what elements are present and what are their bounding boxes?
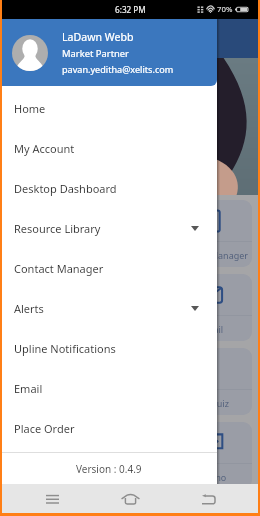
staticText: Contact Manager [14, 261, 104, 276]
button[interactable]: Desktop Dashboard [0, 168, 217, 208]
button[interactable]: Recents [30, 484, 74, 513]
staticText: 70% [217, 4, 233, 15]
button[interactable]: Back [186, 484, 230, 513]
staticText: Events [114, 471, 142, 483]
staticText: Biz Quiz [195, 397, 229, 409]
staticText: Email [200, 323, 224, 335]
button[interactable]: Alerts [0, 288, 217, 328]
staticText: Contact Manager [175, 249, 249, 261]
button[interactable]: LaDawn Webb [0, 19, 217, 86]
button[interactable]: Alerts [4, 348, 84, 415]
button[interactable]: Dashboard [4, 274, 84, 341]
button[interactable]: Library [88, 274, 168, 341]
button[interactable]: Home [0, 88, 217, 128]
button[interactable]: Upline [4, 422, 84, 489]
staticText: pavan.yeditha@xelits.com [62, 63, 174, 75]
button[interactable]: Resource Library [0, 208, 217, 248]
button[interactable]: Email [172, 274, 252, 341]
button[interactable]: Promo [172, 422, 252, 489]
staticText: Upline Notifications [14, 341, 116, 356]
staticText: Alerts [14, 301, 44, 316]
button[interactable]: Home [4, 200, 84, 267]
staticText: LaDawn Webb [62, 30, 134, 44]
button[interactable]: Order [88, 348, 168, 415]
button[interactable]: My Account [88, 200, 168, 267]
staticText: Promo [198, 471, 227, 483]
staticText: Market Partner [62, 47, 130, 60]
staticText: Desktop Dashboard [14, 181, 117, 196]
staticText: Email [14, 381, 43, 396]
staticText: My Account [14, 141, 75, 156]
button[interactable]: Biz Quiz [172, 348, 252, 415]
staticText: Resource Library [14, 221, 101, 236]
button[interactable]: Contact Manager [0, 248, 217, 288]
staticText: Place Order [14, 421, 75, 436]
button[interactable]: Email [0, 368, 217, 408]
button[interactable]: Events [88, 422, 168, 489]
staticText: 6:32 PM [115, 4, 146, 15]
staticText: Home [14, 101, 46, 116]
button[interactable]: Contact Manager [172, 200, 252, 267]
button[interactable]: My Account [0, 128, 217, 168]
button[interactable]: Place Order [0, 408, 217, 448]
button[interactable]: Upline Notifications [0, 328, 217, 368]
button[interactable]: Home [108, 484, 152, 513]
staticText: Version : 0.4.9 [76, 462, 142, 476]
